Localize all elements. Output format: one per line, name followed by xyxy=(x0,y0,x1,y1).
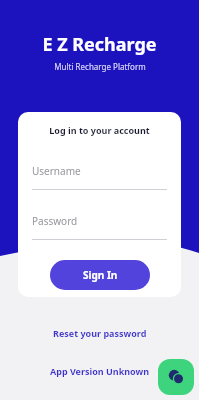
staticText: Reset your password xyxy=(53,327,147,339)
staticText: E Z Recharge xyxy=(42,32,157,57)
staticText: Sign In xyxy=(83,268,118,282)
button[interactable]: Sign In xyxy=(50,260,150,290)
staticText: App Version Unknown xyxy=(50,365,150,377)
staticText: Log in to your account xyxy=(18,124,181,136)
staticText: Password xyxy=(32,214,78,228)
staticText: Multi Recharge Platform xyxy=(54,61,146,72)
staticText: Username xyxy=(32,164,81,178)
button[interactable]: Username xyxy=(32,164,167,190)
button[interactable]: App Version Unknown xyxy=(42,363,158,379)
button[interactable]: Reset your password xyxy=(45,325,155,341)
button[interactable]: Chat on WhatsApp xyxy=(158,359,194,395)
button[interactable]: Password xyxy=(32,214,167,240)
